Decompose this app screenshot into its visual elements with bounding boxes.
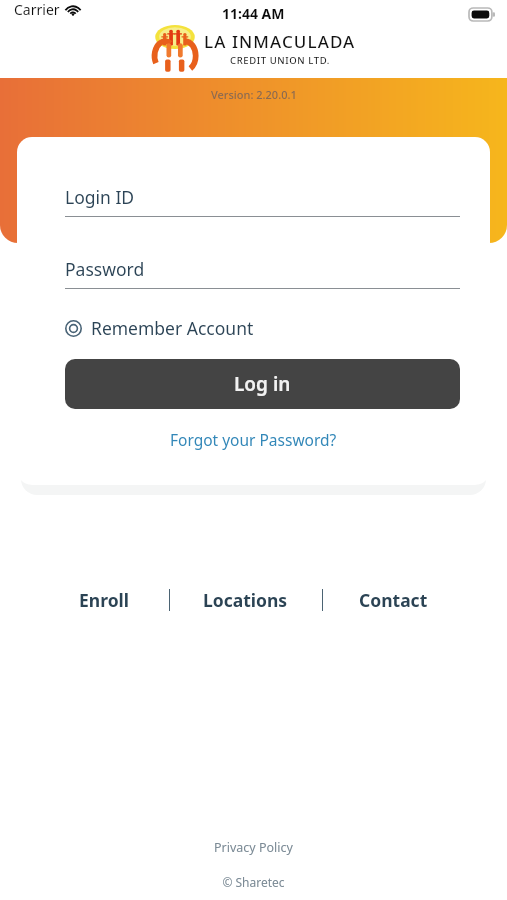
staticText: Carrier <box>14 0 60 19</box>
button[interactable]: Locations <box>200 584 291 616</box>
staticText: Version: 2.20.0.1 <box>211 87 297 102</box>
staticText: LA INMACULADA <box>204 30 356 53</box>
button[interactable]: Privacy Policy <box>208 837 299 858</box>
staticText: Locations <box>203 588 288 612</box>
staticText: Remember Account <box>91 316 254 340</box>
button[interactable]: Forgot your Password? <box>164 426 343 453</box>
staticText: Log in <box>234 371 291 397</box>
staticText: CREDIT UNION LTD. <box>230 54 331 67</box>
button[interactable]: Log in <box>65 359 460 409</box>
other: Battery full <box>469 8 495 21</box>
other: La Inmaculada Credit Union logo <box>152 24 198 72</box>
staticText: Privacy Policy <box>214 839 293 856</box>
staticText: Forgot your Password? <box>170 429 337 450</box>
button[interactable]: Remember Account <box>65 316 254 340</box>
staticText: © Sharetec <box>222 874 285 890</box>
button[interactable]: Login ID <box>65 185 460 217</box>
staticText: 11:44 AM <box>222 4 285 23</box>
button[interactable]: Password <box>65 257 460 289</box>
button[interactable]: Enroll <box>76 584 133 616</box>
staticText: Password <box>65 257 145 281</box>
staticText: Contact <box>359 588 428 612</box>
staticText: Login ID <box>65 185 135 209</box>
other: Wi-Fi signal <box>65 4 81 16</box>
button[interactable]: Contact <box>356 584 431 616</box>
staticText: Enroll <box>79 588 130 612</box>
